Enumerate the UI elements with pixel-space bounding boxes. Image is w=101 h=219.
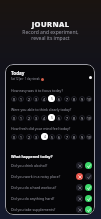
button[interactable]: 0 (11, 96, 17, 102)
staticText: 0 (13, 97, 15, 102)
button[interactable]: 2 (26, 96, 32, 102)
button[interactable]: Yes (85, 162, 92, 169)
staticText: Were you able to think clearly today? (11, 107, 72, 112)
staticText: 8 (73, 116, 75, 121)
button[interactable]: 1 (18, 115, 24, 121)
staticText: Today (11, 70, 25, 76)
button[interactable]: 8 (71, 134, 77, 140)
staticText: 3 (35, 116, 37, 121)
button[interactable]: 7 (64, 96, 70, 102)
button[interactable]: More options (89, 76, 92, 79)
button[interactable]: 9 (79, 115, 85, 121)
button[interactable]: 9 (79, 134, 85, 140)
button[interactable]: 8 (71, 115, 77, 121)
staticText: 9 (81, 97, 83, 102)
button[interactable]: 9 (79, 96, 85, 102)
button[interactable]: 5 (48, 95, 55, 102)
staticText: Sat 12 Jan · 1 day streak (11, 77, 40, 81)
staticText: 10 (87, 135, 91, 140)
button[interactable]: 8 (71, 96, 77, 102)
staticText: 6 (58, 135, 60, 140)
staticText: 10 (87, 116, 91, 121)
staticText: Did you work in a noisy place? (11, 174, 76, 179)
button[interactable]: 0 (11, 115, 17, 121)
staticText: JOURNAL (0, 19, 101, 29)
staticText: 6 (58, 116, 60, 121)
staticText: Record and experiment, reveal its impact (0, 29, 101, 42)
staticText: 9 (81, 116, 83, 121)
staticText: What happened today? (11, 154, 53, 159)
staticText: 7 (66, 97, 68, 102)
staticText: 3 (35, 135, 37, 140)
staticText: 8 (73, 135, 75, 140)
staticText: 5 (51, 135, 53, 140)
staticText: 7 (66, 116, 68, 121)
staticText: 2 (28, 97, 30, 102)
button[interactable]: No (76, 184, 83, 191)
staticText: 5 (51, 96, 53, 101)
button[interactable]: 3 (33, 96, 39, 102)
button[interactable]: 2 (26, 115, 32, 121)
staticText: 1 (20, 97, 22, 102)
button[interactable]: Yes (85, 173, 92, 180)
staticText: Did you take supplements? (11, 207, 76, 212)
staticText: 4 (44, 134, 46, 139)
button[interactable]: 7 (64, 134, 70, 140)
button[interactable]: 7 (64, 115, 70, 121)
button[interactable]: 1 (18, 96, 24, 102)
button[interactable]: No (76, 206, 83, 213)
staticText: 1 (20, 135, 22, 140)
staticText: 8 (73, 97, 75, 102)
staticText: 9 (81, 135, 83, 140)
staticText: 0 (13, 135, 15, 140)
button[interactable]: 4 (41, 115, 47, 121)
staticText: 10 (87, 97, 91, 102)
staticText: 0 (13, 116, 15, 121)
button[interactable]: Yes (85, 206, 92, 213)
staticText: Did you do anything hard? (11, 196, 76, 201)
button[interactable]: Yes (85, 184, 92, 191)
staticText: 5 (51, 115, 53, 120)
button[interactable]: Yes (85, 195, 92, 202)
staticText: 4 (43, 116, 45, 121)
button[interactable]: 2 (26, 134, 32, 140)
button[interactable]: 1 (18, 134, 24, 140)
button[interactable]: 4 (41, 133, 48, 140)
button[interactable]: 5 (49, 134, 55, 140)
staticText: How easy was it to focus today? (11, 88, 63, 93)
button[interactable]: 5 (48, 114, 55, 121)
button[interactable]: 0 (11, 134, 17, 140)
button[interactable]: 10 (86, 134, 92, 140)
staticText: 6 (58, 97, 60, 102)
button[interactable]: 4 (41, 96, 47, 102)
staticText: 2 (28, 116, 30, 121)
button[interactable]: 3 (33, 134, 39, 140)
staticText: 2 (28, 135, 30, 140)
button[interactable]: 3 (33, 115, 39, 121)
staticText: Did you do a hard workout? (11, 185, 76, 190)
button[interactable]: No (76, 173, 83, 180)
button[interactable]: 6 (56, 115, 62, 121)
button[interactable]: 10 (86, 96, 92, 102)
staticText: 7 (66, 135, 68, 140)
staticText: 1 (20, 116, 22, 121)
button[interactable]: 6 (56, 96, 62, 102)
staticText: 3 (35, 97, 37, 102)
button[interactable]: 10 (86, 115, 92, 121)
button[interactable]: No (76, 195, 83, 202)
button[interactable]: No (76, 162, 83, 169)
staticText: 4 (43, 97, 45, 102)
staticText: Did you drink alcohol? (11, 163, 76, 168)
button[interactable]: 6 (56, 134, 62, 140)
staticText: How fresh did your mind feel today? (11, 126, 71, 131)
